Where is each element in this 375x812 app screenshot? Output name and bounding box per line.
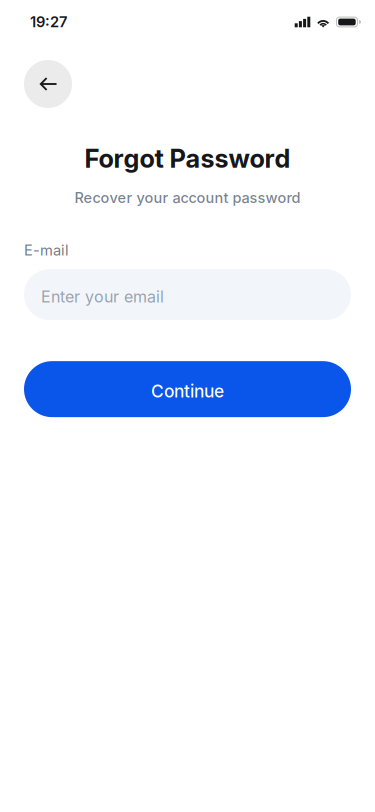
staticText: E-mail	[24, 241, 69, 259]
staticText: 19:27	[30, 13, 67, 31]
staticText: Recover your account password	[74, 189, 300, 206]
staticText: Enter your email	[41, 287, 164, 306]
button[interactable]: Back	[24, 60, 72, 108]
staticText: Continue	[151, 381, 224, 402]
staticText: Forgot Password	[84, 143, 290, 174]
button[interactable]: Continue	[0, 361, 375, 417]
